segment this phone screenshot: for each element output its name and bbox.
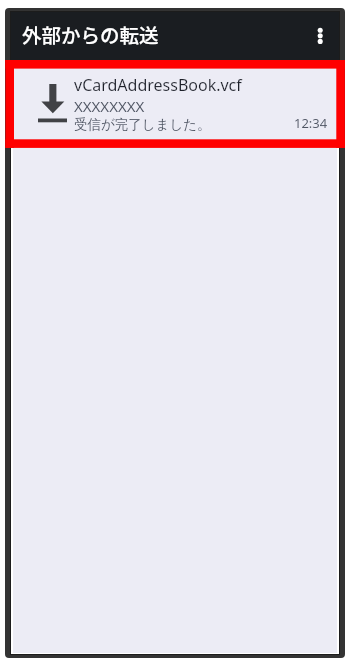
staticText: 受信が完了しました。 bbox=[74, 116, 211, 133]
staticText: XXXXXXXX bbox=[74, 96, 145, 116]
button[interactable]: vCardAddressBook.vcf bbox=[13, 60, 337, 148]
staticText: 外部からの転送 bbox=[22, 20, 159, 48]
staticText: vCardAddressBook.vcf bbox=[74, 74, 242, 96]
button[interactable]: More options bbox=[300, 16, 340, 56]
staticText: 12:34 bbox=[294, 114, 328, 132]
